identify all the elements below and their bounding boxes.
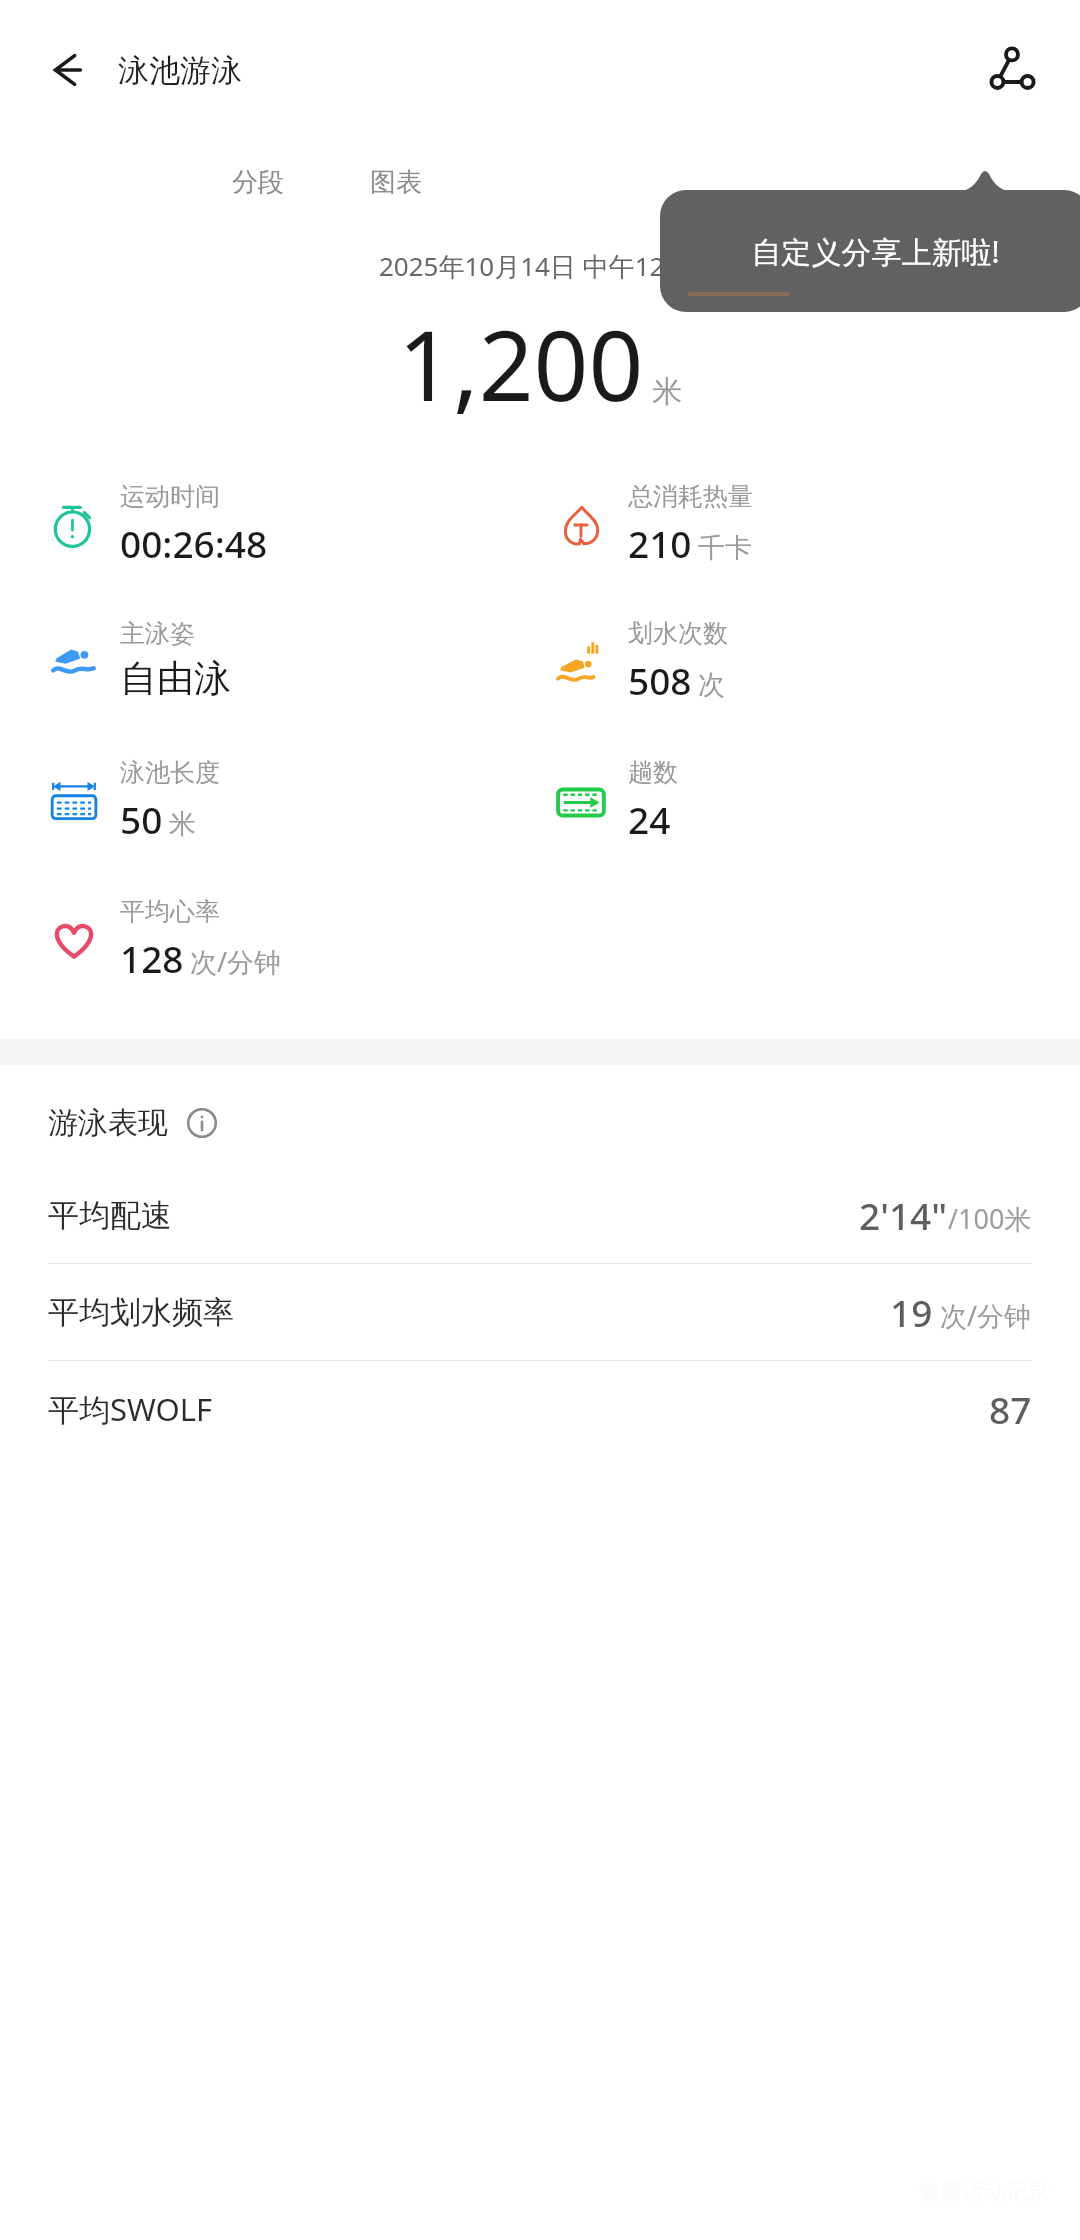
staticText: 平均SWOLF [48, 1388, 213, 1430]
staticText: 分段 [232, 166, 284, 199]
button[interactable]: 平均划水频率 [0, 1264, 1080, 1360]
staticText: 划水次数 [628, 618, 728, 649]
staticText: 次/分钟 [933, 1297, 1032, 1334]
button[interactable]: 图表 [356, 158, 436, 207]
button[interactable]: 平均配速 [0, 1167, 1080, 1263]
staticText: 1,200 [398, 298, 644, 429]
button[interactable]: 平均心率 [48, 892, 282, 987]
button[interactable]: Back [24, 28, 108, 112]
staticText: 总消耗热量 [628, 481, 753, 512]
button[interactable]: 总消耗热量 [556, 477, 753, 572]
staticText: 次/分钟 [190, 943, 282, 980]
staticText: 泳池长度 [120, 757, 220, 788]
button[interactable]: 平均SWOLF [0, 1361, 1080, 1457]
staticText: 平均心率 [120, 896, 220, 927]
button[interactable]: 分段 [218, 158, 298, 207]
staticText: 平均配速 [48, 1196, 172, 1235]
staticText: 210 [628, 518, 692, 568]
button[interactable]: 自定义分享上新啦! [660, 170, 1080, 312]
button[interactable]: 泳池长度 [48, 753, 220, 848]
button[interactable]: 运动时间 [48, 477, 268, 572]
staticText: 2025年10月14日 中午12:35 [379, 248, 702, 284]
staticText: 千卡 [698, 531, 752, 565]
staticText: 米 [652, 373, 682, 411]
staticText: 50 [120, 794, 163, 844]
button[interactable]: Share [970, 28, 1054, 112]
staticText: 自定义分享上新啦! [751, 231, 1000, 272]
staticText: /100米 [948, 1200, 1032, 1237]
staticText: 米 [169, 807, 196, 841]
staticText: 87 [989, 1384, 1032, 1434]
staticText: 次 [698, 668, 725, 702]
button[interactable]: 划水次数 [556, 614, 728, 709]
staticText: 19 [890, 1287, 933, 1337]
button[interactable]: 主泳姿 [48, 614, 231, 706]
staticText: 平均划水频率 [48, 1293, 234, 1332]
staticText: 2'14" [859, 1190, 948, 1240]
staticText: 24 [628, 794, 671, 844]
staticText: 自由泳 [120, 655, 231, 702]
staticText: 508 [628, 655, 692, 705]
staticText: 00:26:48 [120, 518, 268, 568]
staticText: 图表 [370, 166, 422, 199]
staticText: 运动时间 [120, 481, 220, 512]
button[interactable]: 趟数 [556, 753, 678, 848]
staticText: 主泳姿 [120, 618, 195, 649]
staticText: 泳池游泳 [118, 51, 242, 90]
staticText: 趟数 [628, 757, 678, 788]
staticText: 128 [120, 933, 184, 983]
button[interactable]: Info [180, 1101, 224, 1145]
staticText: 游泳表现 [48, 1104, 168, 1142]
